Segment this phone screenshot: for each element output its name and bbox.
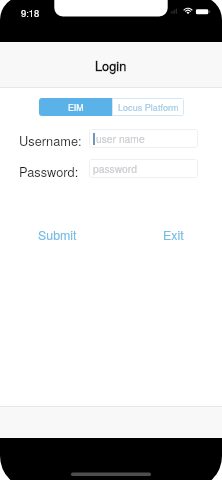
staticText: 9:18 [21, 6, 40, 19]
button[interactable]: Submit [30, 226, 85, 243]
staticText: Login [95, 56, 127, 74]
button[interactable]: password [89, 159, 198, 178]
staticText: Submit [38, 226, 77, 243]
button[interactable]: Exit [152, 226, 194, 243]
staticText: password [93, 161, 137, 176]
staticText: Exit [163, 226, 184, 243]
staticText: Locus Platform [118, 101, 179, 114]
button[interactable]: EIM [39, 98, 112, 116]
button[interactable]: Locus Platform [112, 98, 184, 116]
staticText: Username: [19, 131, 82, 149]
staticText: user name [96, 131, 145, 146]
staticText: Password: [19, 162, 79, 180]
button[interactable]: user name [89, 129, 198, 148]
staticText: EIM [68, 101, 84, 114]
